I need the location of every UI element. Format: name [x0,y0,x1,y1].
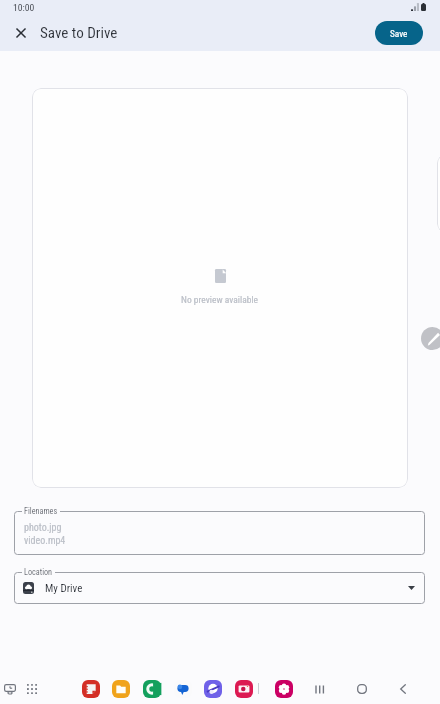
staticText: Filenames [24,506,58,516]
staticText: My Drive [45,582,83,595]
button[interactable]: App [204,680,222,698]
staticText: No preview available [181,294,259,305]
button[interactable]: photo.jpg [14,511,425,555]
button[interactable]: Recent apps [310,683,330,695]
button[interactable]: App [235,680,253,698]
button[interactable]: Save [375,21,423,45]
button[interactable]: Back [393,683,413,695]
button[interactable]: My Drive [14,572,425,604]
staticText: Save [390,28,408,39]
button[interactable]: Recent apps [0,681,20,697]
staticText: video.mp4 [24,535,66,547]
button[interactable]: Apps [23,681,41,697]
staticText: 10:00 [13,2,35,13]
button[interactable]: App [174,680,192,698]
button[interactable]: App [82,680,100,698]
button[interactable]: Home [352,683,372,695]
staticText: Location [24,567,53,577]
button[interactable]: App [143,680,161,698]
button[interactable]: App [275,680,293,698]
staticText: photo.jpg [24,522,62,534]
staticText: Save to Drive [40,24,118,42]
button[interactable]: No preview available [32,88,408,488]
button[interactable]: Close [9,21,33,45]
button[interactable]: Edit [421,327,440,350]
button[interactable]: App [112,680,130,698]
